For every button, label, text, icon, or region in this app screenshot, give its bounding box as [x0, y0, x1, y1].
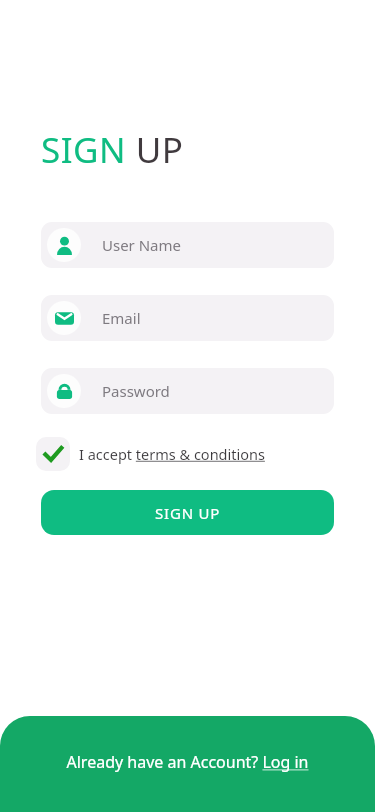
button[interactable]: Already have an Account? Log in [0, 716, 375, 812]
button[interactable]: User name [41, 222, 334, 268]
staticText: SIGN UP [41, 126, 184, 174]
other: Email [55, 309, 74, 328]
staticText: Email [102, 308, 141, 328]
other: User name [55, 236, 74, 255]
button[interactable]: SIGN UP [41, 490, 334, 535]
staticText: Already have an Account? Log in [66, 751, 309, 773]
staticText: I accept terms & conditions [79, 444, 265, 464]
staticText: Password [102, 381, 170, 401]
button[interactable]: Email [41, 295, 334, 341]
staticText: User Name [102, 235, 182, 255]
staticText: SIGN UP [155, 503, 221, 523]
button[interactable]: I accept terms & conditions [36, 437, 265, 471]
button[interactable]: Password [41, 368, 334, 414]
other: Password [55, 382, 74, 401]
